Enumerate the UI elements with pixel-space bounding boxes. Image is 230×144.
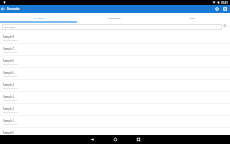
button[interactable]: Notebooks (76, 13, 153, 23)
button[interactable]: Sample 8 (0, 32, 230, 44)
staticText: Sample 1 (3, 119, 14, 122)
staticText: Sample 4 (3, 83, 14, 86)
staticText: Apr 26, 2013 8:42 PM (3, 39, 18, 41)
staticText: Sample 7 (3, 47, 14, 50)
staticText: Apr 26, 2013 8:42 PM (3, 75, 18, 77)
button[interactable]: Sample 0 (0, 128, 230, 140)
button[interactable]: Sample 6 (0, 56, 230, 68)
staticText: Sample 0 (3, 131, 14, 134)
button[interactable]: Recent apps (134, 135, 142, 143)
staticText: Sample 8 (3, 35, 14, 38)
staticText: Apr 26, 2013 8:42 PM (3, 123, 18, 125)
button[interactable]: New note (221, 5, 229, 13)
staticText: Notebooks (108, 16, 121, 19)
button[interactable]: Back (0, 5, 7, 13)
staticText: Apr 26, 2013 8:42 PM (3, 99, 18, 101)
button[interactable]: Tags (153, 13, 230, 23)
staticText: Apr 26, 2013 8:42 PM (3, 63, 18, 65)
staticText: Sample 5 (3, 71, 14, 74)
staticText: Sample 6 (3, 59, 14, 62)
button[interactable]: Sample 2 (0, 104, 230, 116)
staticText: Type to search (4, 26, 16, 28)
button[interactable]: Type to search (2, 24, 222, 30)
button[interactable]: Sync (213, 5, 221, 13)
staticText: All Notes (33, 16, 44, 19)
staticText: 10:31 (221, 1, 228, 5)
button[interactable]: Home (111, 135, 119, 143)
button[interactable]: Back (88, 135, 96, 143)
button[interactable]: Sample 4 (0, 80, 230, 92)
staticText: Apr 26, 2013 8:42 PM (3, 87, 18, 89)
other: Search (223, 24, 227, 28)
button[interactable]: Sample 3 (0, 92, 230, 104)
staticText: Evernote (7, 7, 20, 11)
staticText: Sample 2 (3, 107, 14, 110)
staticText: Sample 3 (3, 95, 14, 98)
button[interactable]: Sample 5 (0, 68, 230, 80)
staticText: Apr 26, 2013 8:42 PM (3, 51, 18, 53)
button[interactable]: Sample 7 (0, 44, 230, 56)
staticText: Tags (189, 16, 195, 19)
button[interactable]: All Notes (0, 13, 76, 23)
button[interactable]: Sample 1 (0, 116, 230, 128)
staticText: Apr 26, 2013 8:42 PM (3, 111, 18, 113)
